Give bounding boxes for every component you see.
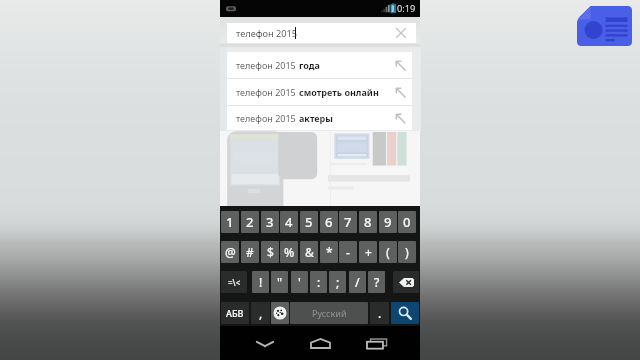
button[interactable]: ; — [329, 271, 346, 293]
button[interactable]: Back — [251, 333, 279, 355]
button[interactable]: 1 — [221, 211, 239, 233]
staticText: 3 — [266, 213, 274, 231]
staticText: 9 — [384, 213, 392, 231]
staticText: & — [305, 244, 314, 260]
button[interactable]: АБВ — [221, 302, 249, 324]
staticText: # — [246, 244, 254, 260]
button[interactable]: % — [280, 241, 298, 263]
staticText: : — [317, 274, 321, 290]
button[interactable]: телефон 2015 — [227, 23, 416, 43]
button[interactable]: 8 — [359, 211, 377, 233]
button[interactable]: ! — [252, 271, 269, 293]
button[interactable]: * — [320, 241, 338, 263]
button[interactable]: ' — [291, 271, 308, 293]
staticText: ( — [386, 244, 390, 260]
staticText: телефон 2015 — [236, 112, 299, 124]
button[interactable]: " — [271, 271, 288, 293]
staticText: ) — [405, 244, 409, 260]
button[interactable]: =\< — [221, 271, 247, 293]
button[interactable]: . — [370, 302, 389, 324]
staticText: Русский — [312, 307, 347, 319]
staticText: 1 — [226, 213, 234, 231]
staticText: телефон 2015 — [236, 59, 299, 71]
staticText: смотреть онлайн — [299, 86, 379, 98]
button[interactable] — [393, 271, 419, 293]
staticText: 2 — [246, 213, 254, 231]
staticText: телефон 2015 — [236, 86, 299, 98]
staticText: * — [326, 244, 333, 260]
staticText: ! — [259, 274, 263, 290]
staticText: 6 — [325, 213, 333, 231]
button[interactable]: - — [339, 241, 357, 263]
staticText: телефон 2015 — [236, 27, 297, 40]
button[interactable]: 0 — [398, 211, 416, 233]
staticText: + — [365, 244, 372, 260]
button[interactable]: Recent apps — [361, 332, 391, 354]
button[interactable]: 3 — [261, 211, 279, 233]
staticText: 4 — [285, 213, 293, 231]
button[interactable]: телефон 2015 — [227, 79, 412, 105]
button[interactable]: $ — [261, 241, 279, 263]
staticText: актеры — [299, 112, 334, 124]
button[interactable]: 6 — [320, 211, 338, 233]
button[interactable]: ( — [379, 241, 397, 263]
button[interactable] — [271, 302, 289, 324]
staticText: $ — [267, 244, 274, 260]
staticText: 0:19 — [397, 2, 416, 15]
button[interactable]: + — [359, 241, 377, 263]
button[interactable]: @ — [221, 241, 239, 263]
staticText: 8 — [364, 213, 372, 231]
button[interactable]: 2 — [241, 211, 259, 233]
staticText: @ — [225, 244, 236, 260]
button[interactable]: Home — [305, 332, 335, 354]
staticText: ; — [336, 274, 340, 290]
staticText: 5 — [305, 213, 313, 231]
button[interactable]: : — [310, 271, 327, 293]
staticText: - — [346, 244, 350, 260]
button[interactable] — [391, 302, 419, 324]
button[interactable]: # — [241, 241, 259, 263]
button[interactable]: 4 — [280, 211, 298, 233]
button[interactable]: телефон 2015 — [227, 52, 412, 78]
staticText: ' — [298, 274, 301, 290]
staticText: АБВ — [226, 307, 244, 319]
button[interactable]: & — [300, 241, 318, 263]
button[interactable]: 5 — [300, 211, 318, 233]
staticText: . — [378, 305, 382, 321]
staticText: 0 — [403, 213, 411, 231]
staticText: =\< — [228, 277, 241, 288]
button[interactable]: , — [251, 302, 270, 324]
staticText: / — [355, 274, 360, 290]
staticText: ? — [374, 274, 380, 290]
staticText: года — [299, 59, 320, 71]
staticText: " — [277, 274, 283, 290]
button[interactable]: 9 — [379, 211, 397, 233]
button[interactable]: 7 — [339, 211, 357, 233]
button[interactable]: телефон 2015 — [227, 106, 412, 130]
staticText: 7 — [344, 213, 352, 231]
button[interactable]: ? — [368, 271, 385, 293]
staticText: , — [259, 305, 263, 321]
button[interactable]: / — [349, 271, 366, 293]
button[interactable]: Google Play Newsstand — [577, 6, 632, 46]
button[interactable]: ) — [398, 241, 416, 263]
staticText: % — [284, 244, 295, 260]
button[interactable]: Русский — [290, 302, 368, 324]
